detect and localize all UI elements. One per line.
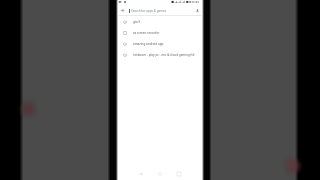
button[interactable]: az screen recorder xyxy=(117,27,203,38)
staticText: az screen recorder xyxy=(133,31,160,35)
button[interactable]: amazing android app xyxy=(117,38,203,49)
button[interactable]: Back xyxy=(117,6,128,15)
button[interactable]: gta 5 xyxy=(117,16,203,27)
staticText: amazing android app xyxy=(133,42,164,46)
button[interactable]: Home xyxy=(155,169,165,178)
button[interactable]: netboom - play pc - mic & cloud gaming h… xyxy=(117,49,203,60)
staticText: gta 5 xyxy=(133,20,141,24)
button[interactable]: Voice search xyxy=(192,6,203,15)
staticText: netboom - play pc - mic & cloud gaming h… xyxy=(133,53,195,57)
button[interactable]: Back xyxy=(136,169,146,178)
staticText: Search for apps & games xyxy=(131,9,167,13)
button[interactable]: Recents xyxy=(174,169,184,178)
